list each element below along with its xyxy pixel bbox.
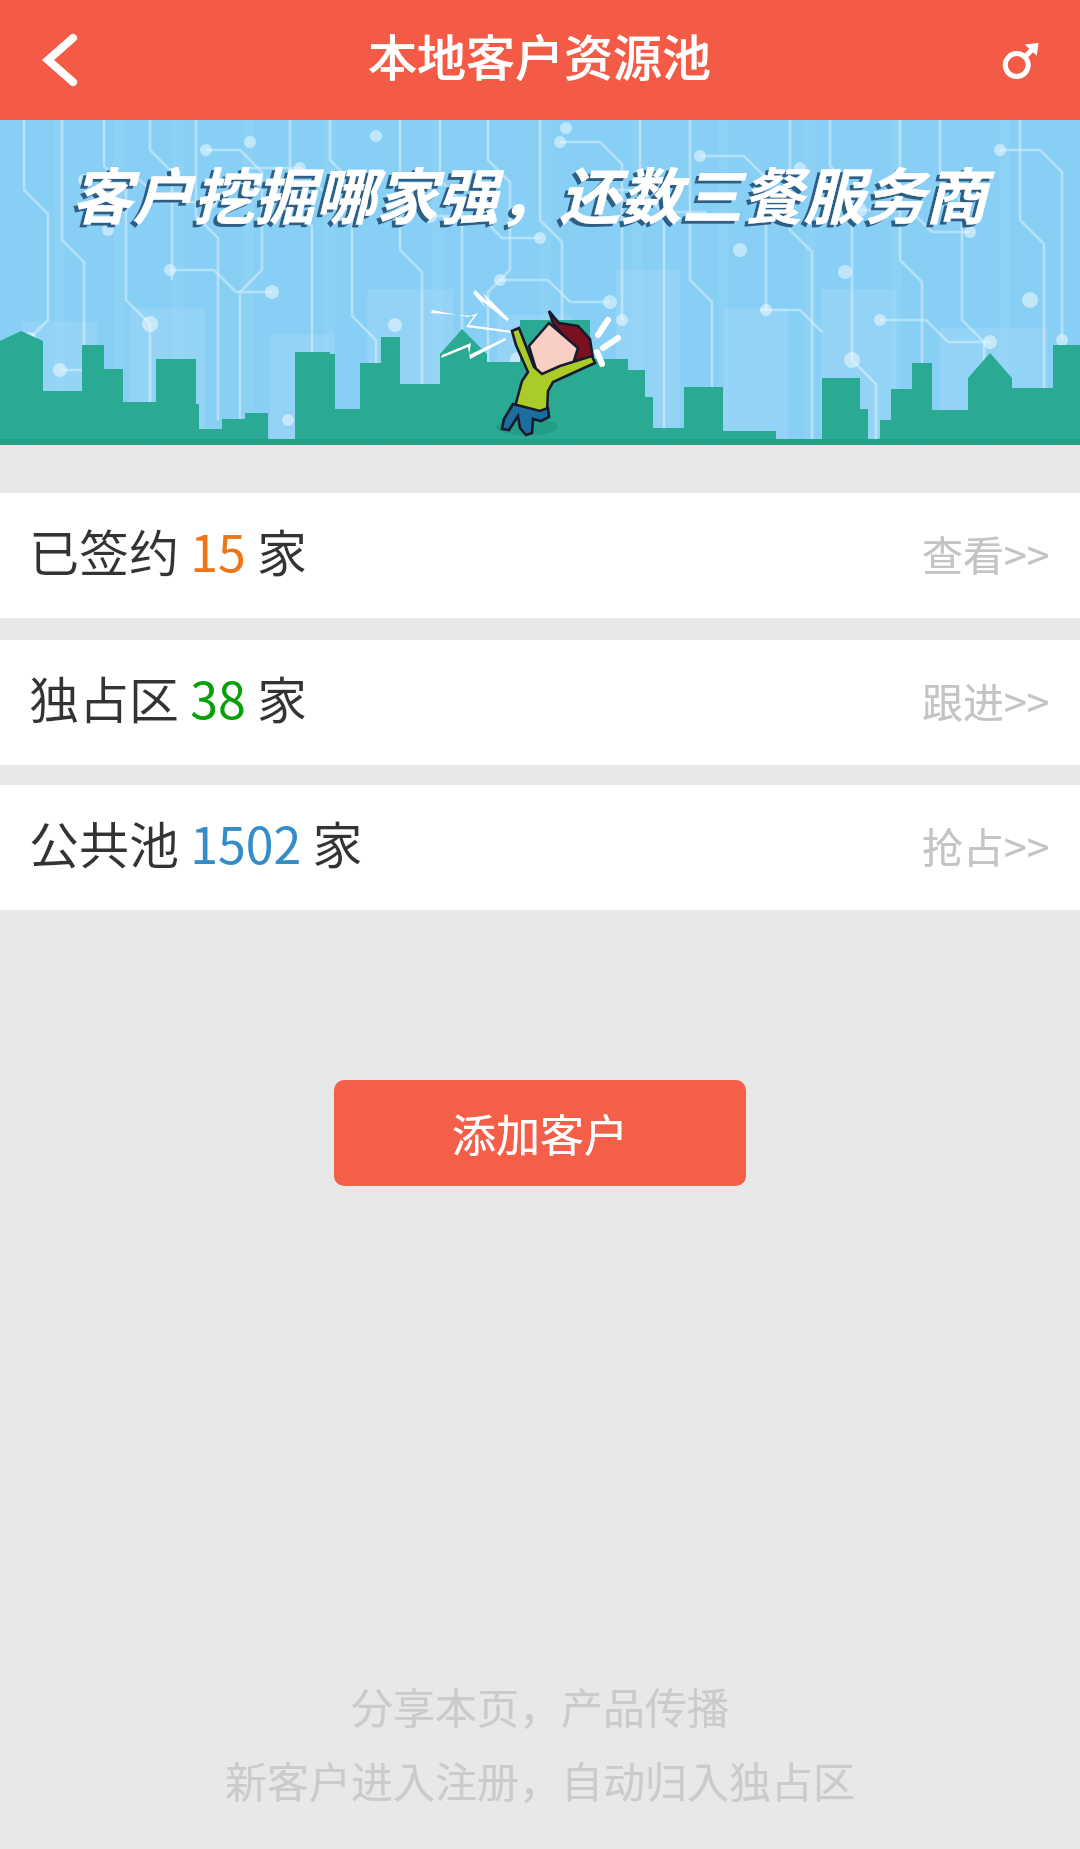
staticText: 独占区 38 家 bbox=[29, 661, 307, 733]
staticText: 抢占>> bbox=[922, 815, 1050, 874]
button[interactable]: Gender filter bbox=[960, 0, 1080, 120]
staticText: 已签约 15 家 bbox=[29, 514, 307, 586]
staticText: 本地客户资源池 bbox=[368, 19, 712, 90]
staticText: 新客户进入注册，自动归入独占区 bbox=[0, 1749, 1080, 1810]
staticText: 分享本页，产品传播 bbox=[0, 1675, 1080, 1736]
staticText: 跟进>> bbox=[922, 670, 1050, 729]
staticText: 客户挖掘哪家强，还数三餐服务商 bbox=[0, 151, 1065, 235]
button[interactable]: 独占区 38 家 bbox=[0, 640, 1080, 765]
staticText: 公共池 1502 家 bbox=[29, 806, 363, 878]
button[interactable]: Back bbox=[0, 0, 120, 120]
staticText: 客户挖掘哪家强，还数三餐服务商 bbox=[0, 148, 1069, 232]
button[interactable]: 公共池 1502 家 bbox=[0, 785, 1080, 910]
button[interactable]: 已签约 15 家 bbox=[0, 493, 1080, 618]
button[interactable]: 添加客户 bbox=[334, 1080, 746, 1186]
staticText: 查看>> bbox=[922, 523, 1050, 582]
staticText: 添加客户 bbox=[452, 1101, 628, 1165]
